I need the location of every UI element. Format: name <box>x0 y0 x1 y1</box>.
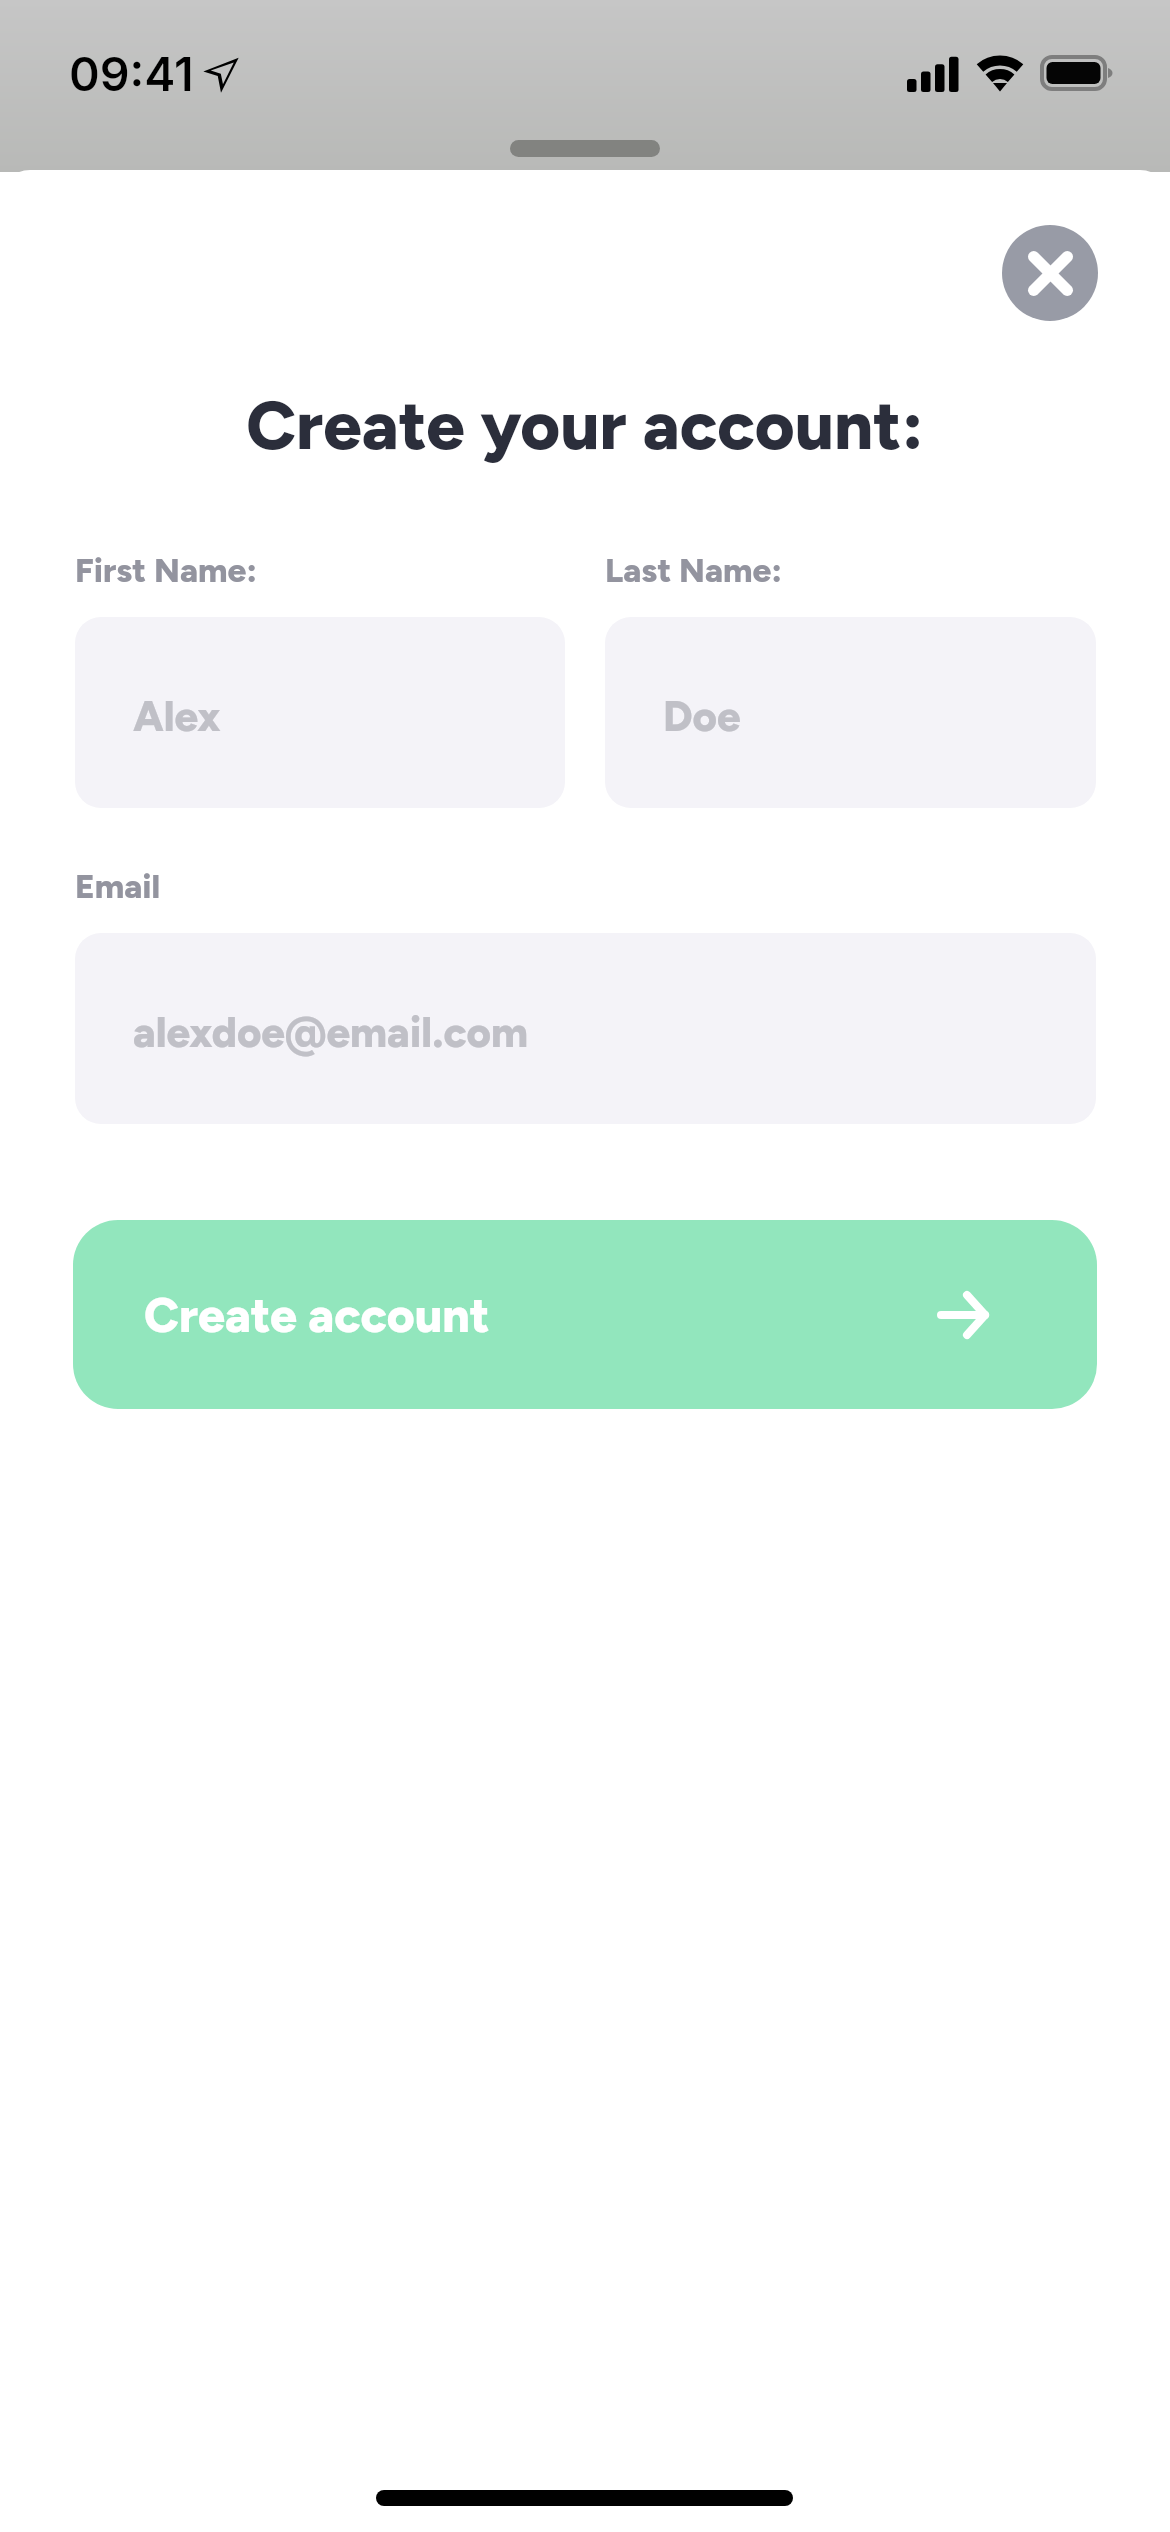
staticText: Create account <box>144 1286 490 1344</box>
staticText: 09:41 <box>69 45 194 102</box>
staticText: Doe <box>663 691 741 741</box>
staticText: First Name: <box>75 550 258 590</box>
button[interactable]: alexdoe@email.com <box>75 933 1096 1124</box>
staticText: alexdoe@email.com <box>133 1007 528 1057</box>
button[interactable]: Close <box>1002 225 1098 321</box>
button[interactable]: Create account <box>73 1220 1097 1409</box>
staticText: Alex <box>133 691 221 741</box>
staticText: Create your account: <box>0 384 1170 466</box>
button[interactable]: Doe <box>605 617 1096 808</box>
staticText: Email <box>75 866 161 906</box>
staticText: Last Name: <box>605 550 783 590</box>
button[interactable]: Drag handle <box>510 140 660 157</box>
button[interactable]: Alex <box>75 617 565 808</box>
